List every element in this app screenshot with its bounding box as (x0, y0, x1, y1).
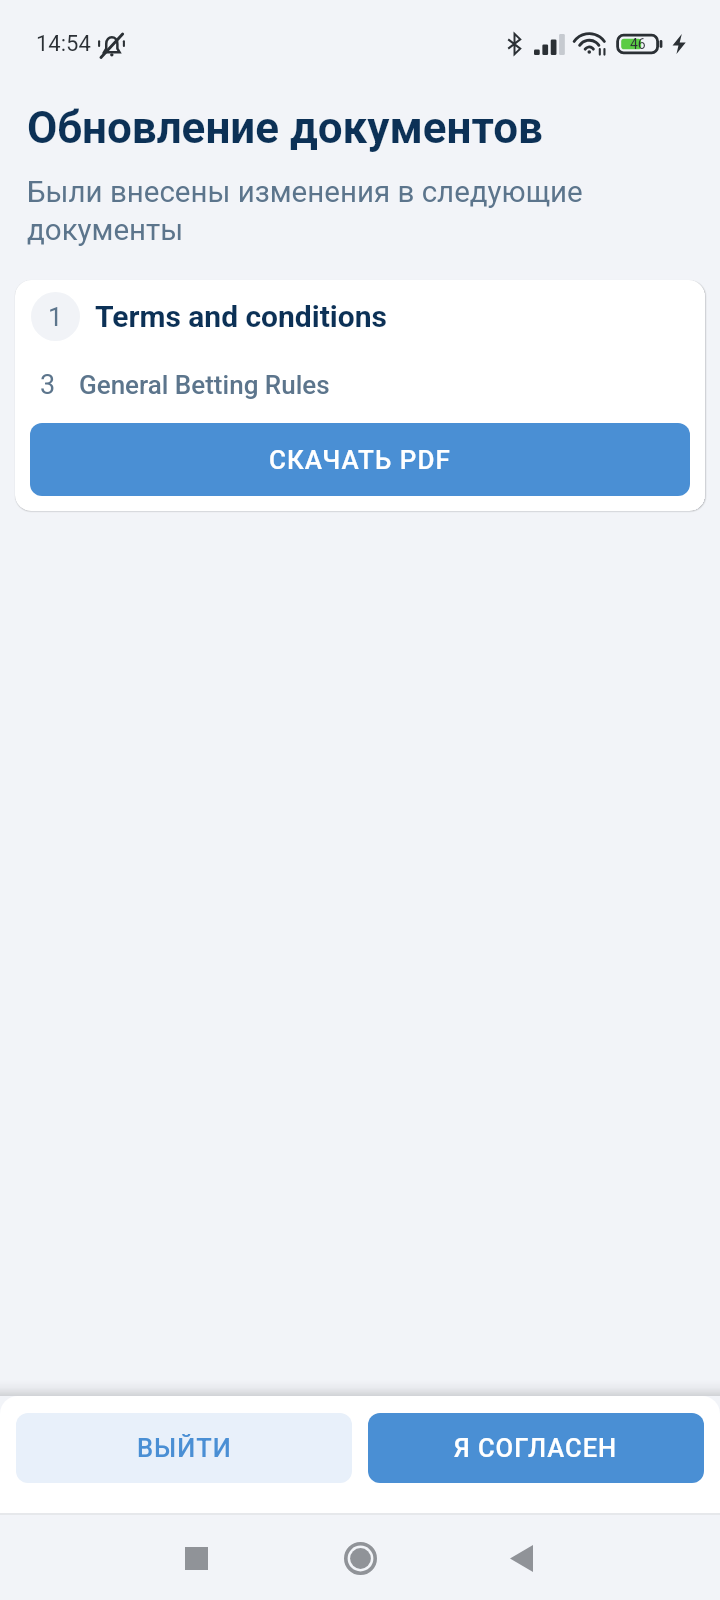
staticText: 14:54 (36, 31, 91, 57)
button[interactable]: Back (481, 1518, 561, 1598)
staticText: Я СОГЛАСЕН (454, 1433, 618, 1463)
staticText: ВЫЙТИ (137, 1433, 232, 1463)
staticText: General Betting Rules (79, 370, 330, 400)
staticText: СКАЧАТЬ PDF (269, 445, 451, 475)
staticText: 3 (40, 369, 56, 401)
staticText: 46 (630, 36, 646, 52)
staticText: Terms and conditions (95, 299, 387, 334)
staticText: Обновление документов (27, 102, 543, 154)
button[interactable]: Home (320, 1518, 400, 1598)
button[interactable]: ВЫЙТИ (16, 1413, 352, 1483)
button[interactable]: Recent apps (156, 1518, 236, 1598)
button[interactable]: 1 (15, 280, 705, 352)
staticText: Были внесены изменения в следующие докум… (27, 175, 645, 247)
staticText: 1 (48, 302, 63, 332)
button[interactable]: Я СОГЛАСЕН (368, 1413, 704, 1483)
button[interactable]: 3 (15, 352, 705, 418)
button[interactable]: СКАЧАТЬ PDF (30, 423, 690, 496)
